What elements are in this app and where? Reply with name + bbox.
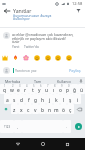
- button[interactable]: ,: [14, 120, 22, 133]
- staticText: .: [66, 124, 68, 129]
- button[interactable]: ş: [67, 94, 74, 104]
- button[interactable]: Fire emoji: [11, 53, 20, 62]
- staticText: ğ: [73, 87, 76, 94]
- staticText: u: [45, 87, 49, 94]
- staticText: ç: [69, 107, 72, 114]
- staticText: 12:58: [72, 1, 83, 6]
- button[interactable]: Tam: [25, 78, 51, 84]
- button[interactable]: Crown emoji: [0, 53, 9, 62]
- button[interactable]: 0: [64, 84, 71, 94]
- staticText: 8: [54, 84, 56, 88]
- button[interactable]: Emoji: [53, 53, 62, 62]
- staticText: Yanıt: [12, 45, 20, 49]
- staticText: y: [38, 87, 41, 94]
- staticText: x: [20, 107, 23, 114]
- button[interactable]: Emoji: [43, 53, 52, 62]
- staticText: 5: [33, 84, 35, 88]
- button[interactable]: ç: [67, 104, 74, 114]
- button[interactable]: g: [32, 94, 39, 104]
- staticText: Paylaş: [69, 68, 81, 73]
- staticText: r: [24, 87, 27, 94]
- button[interactable]: n: [46, 104, 53, 114]
- button[interactable]: a: [4, 94, 11, 104]
- button[interactable]: Send: [71, 120, 85, 133]
- button[interactable]: j: [46, 94, 53, 104]
- button[interactable]: Voice input: [77, 78, 85, 84]
- button[interactable]: 4: [22, 84, 29, 94]
- button[interactable]: i: [74, 94, 81, 104]
- button[interactable]: Emoji: [32, 53, 41, 62]
- staticText: e: [17, 87, 20, 94]
- staticText: m: [54, 107, 59, 114]
- staticText: 6: [40, 84, 42, 88]
- button[interactable]: Shift: [0, 104, 11, 114]
- staticText: acırlılar @onadiosan çok kazandıran, etk…: [12, 32, 82, 44]
- button[interactable]: 2: [8, 84, 15, 94]
- staticText: l: [63, 97, 65, 104]
- staticText: h: [41, 97, 45, 104]
- staticText: c: [27, 107, 30, 114]
- staticText: ş: [69, 97, 72, 104]
- button[interactable]: 7: [43, 84, 50, 94]
- staticText: f: [28, 97, 30, 104]
- button[interactable]: b: [39, 104, 46, 114]
- button[interactable]: x: [18, 104, 25, 114]
- button[interactable]: Back: [0, 7, 13, 28]
- button[interactable]: Blossom emoji: [21, 53, 30, 62]
- staticText: Tam: [34, 79, 42, 84]
- button[interactable]: ?123: [0, 120, 14, 133]
- staticText: #uyumuzunuzun #uzaya #ulbolspor: [13, 13, 52, 20]
- button[interactable]: c: [25, 104, 32, 114]
- staticText: i: [77, 97, 79, 104]
- button[interactable]: 6: [36, 84, 43, 94]
- button[interactable]: Recents: [61, 138, 73, 150]
- button[interactable]: Backspace: [74, 104, 85, 114]
- staticText: s: [13, 97, 16, 104]
- button[interactable]: 8: [50, 84, 57, 94]
- staticText: ,: [17, 124, 19, 129]
- staticText: q: [3, 87, 6, 94]
- button[interactable]: s: [11, 94, 18, 104]
- button[interactable]: l: [60, 94, 67, 104]
- button[interactable]: 5: [29, 84, 36, 94]
- staticText: z: [13, 107, 16, 114]
- staticText: 7: [47, 84, 49, 88]
- button[interactable]: ü: [78, 84, 85, 94]
- staticText: ı: [53, 87, 55, 94]
- staticText: Yanıtlar: [13, 7, 32, 14]
- staticText: 1: [4, 84, 6, 88]
- staticText: p: [66, 87, 69, 94]
- button[interactable]: m: [53, 104, 60, 114]
- button[interactable]: Emoji: [64, 53, 73, 62]
- button[interactable]: Kullanıcı: [51, 78, 77, 84]
- button[interactable]: ğ: [71, 84, 78, 94]
- staticText: n: [48, 107, 52, 114]
- button[interactable]: 1: [0, 84, 8, 94]
- button[interactable]: f: [25, 94, 32, 104]
- button[interactable]: Back: [12, 138, 24, 150]
- button[interactable]: Home: [37, 138, 49, 150]
- button[interactable]: k: [53, 94, 60, 104]
- staticText: 0: [68, 84, 70, 88]
- button[interactable]: Filter: [72, 7, 85, 28]
- button[interactable]: Merhaba: [0, 78, 25, 84]
- button[interactable]: Paylaş: [67, 66, 83, 75]
- staticText: g: [34, 97, 37, 104]
- button[interactable]: ö: [60, 104, 67, 114]
- button[interactable]: z: [11, 104, 18, 114]
- button[interactable]: 9: [57, 84, 64, 94]
- button[interactable]: h: [39, 94, 46, 104]
- button[interactable]: d: [18, 94, 25, 104]
- button[interactable]: v: [32, 104, 39, 114]
- staticText: Yanıtınızı yaz: [15, 68, 37, 73]
- staticText: 2: [12, 84, 14, 88]
- staticText: j: [49, 97, 51, 104]
- staticText: ?123: [4, 125, 11, 129]
- staticText: k: [55, 97, 58, 104]
- staticText: Twitter'da: [24, 45, 39, 49]
- staticText: 9: [61, 84, 63, 88]
- staticText: Kullanıcı: [57, 79, 72, 84]
- button[interactable]: 3: [15, 84, 22, 94]
